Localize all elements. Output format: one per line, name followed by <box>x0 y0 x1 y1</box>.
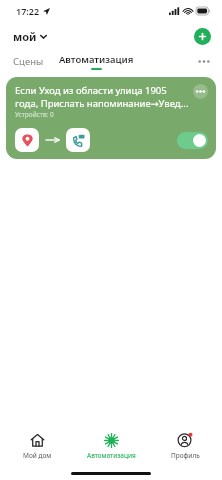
staticText: Автоматизация <box>87 451 136 460</box>
staticText: мой <box>13 29 37 44</box>
button[interactable]: Сцены <box>10 53 47 70</box>
staticText: 17:22 <box>16 5 40 17</box>
button[interactable]: Если Уход из области улица 1905 года, Пр… <box>6 77 216 159</box>
button[interactable]: Меню сценария <box>193 84 208 99</box>
button[interactable]: Мой дом <box>0 426 74 466</box>
button[interactable]: Добавить <box>194 28 211 45</box>
staticText: Профиль <box>171 451 200 460</box>
staticText: Сцены <box>13 55 44 68</box>
staticText: Устройств: 0 <box>15 110 54 119</box>
button[interactable]: Автоматизация <box>56 53 137 70</box>
other: Геолокация <box>15 128 39 152</box>
staticText: Автоматизация <box>59 53 134 66</box>
button[interactable]: Включено <box>177 132 208 149</box>
button[interactable]: Ещё <box>195 52 213 70</box>
staticText: Мой дом <box>23 451 52 460</box>
staticText: Если Уход из области улица 1905 года, Пр… <box>15 84 189 109</box>
button[interactable]: Автоматизация <box>74 426 148 466</box>
other: Уведомление <box>66 128 90 152</box>
button[interactable]: Профиль <box>148 426 222 466</box>
button[interactable]: мой <box>11 26 49 47</box>
